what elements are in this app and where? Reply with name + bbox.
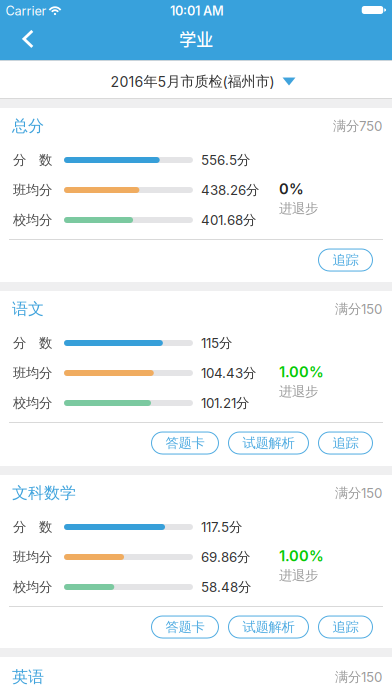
- staticText: 进退步: [279, 567, 318, 584]
- staticText: 追踪: [332, 435, 358, 451]
- staticText: 满分150: [335, 301, 382, 317]
- button[interactable]: 试题解析: [228, 432, 308, 454]
- staticText: 69.86分: [201, 549, 250, 565]
- staticText: 101.21分: [201, 395, 249, 411]
- staticText: 班均分: [13, 549, 52, 565]
- staticText: 2016年5月市质检(福州市): [110, 73, 274, 90]
- staticText: 文科数学: [12, 483, 76, 503]
- staticText: 追踪: [332, 252, 358, 268]
- staticText: 答题卡: [165, 435, 204, 451]
- staticText: 满分150: [335, 485, 382, 501]
- button[interactable]: 试题解析: [228, 616, 308, 638]
- staticText: 1.00%: [279, 363, 324, 381]
- staticText: 进退步: [279, 200, 318, 217]
- staticText: 0%: [279, 180, 304, 198]
- staticText: 追踪: [332, 619, 358, 635]
- staticText: 学业: [179, 26, 213, 51]
- staticText: 试题解析: [242, 435, 294, 451]
- staticText: 556.5分: [201, 152, 250, 168]
- staticText: 进退步: [279, 383, 318, 400]
- button[interactable]: Back: [8, 19, 48, 59]
- staticText: 58.48分: [201, 579, 251, 595]
- button[interactable]: 追踪: [318, 249, 372, 271]
- staticText: 总分: [12, 116, 44, 136]
- staticText: 115分: [201, 335, 232, 351]
- staticText: 校均分: [13, 395, 52, 411]
- button[interactable]: 2016年5月市质检(福州市): [0, 60, 392, 99]
- staticText: 校均分: [13, 212, 52, 228]
- staticText: 10:01 AM: [170, 3, 224, 19]
- button[interactable]: 追踪: [318, 616, 372, 638]
- staticText: Carrier: [5, 3, 46, 19]
- staticText: 班均分: [13, 182, 52, 198]
- staticText: 校均分: [13, 579, 52, 595]
- staticText: 满分750: [333, 118, 382, 134]
- button[interactable]: 答题卡: [151, 616, 218, 638]
- staticText: 分 数: [13, 152, 52, 168]
- staticText: 答题卡: [165, 619, 204, 635]
- staticText: 104.43分: [201, 365, 256, 381]
- staticText: 401.68分: [201, 212, 256, 228]
- staticText: 分 数: [13, 519, 52, 535]
- staticText: 分 数: [13, 335, 52, 351]
- staticText: 117.5分: [201, 519, 242, 535]
- staticText: 语文: [12, 299, 44, 319]
- button[interactable]: 追踪: [318, 432, 372, 454]
- button[interactable]: 答题卡: [151, 432, 218, 454]
- staticText: 英语: [12, 667, 44, 687]
- staticText: 满分150: [335, 669, 382, 685]
- staticText: 试题解析: [242, 619, 294, 635]
- staticText: 438.26分: [201, 182, 259, 198]
- staticText: 班均分: [13, 365, 52, 381]
- staticText: 1.00%: [279, 547, 324, 565]
